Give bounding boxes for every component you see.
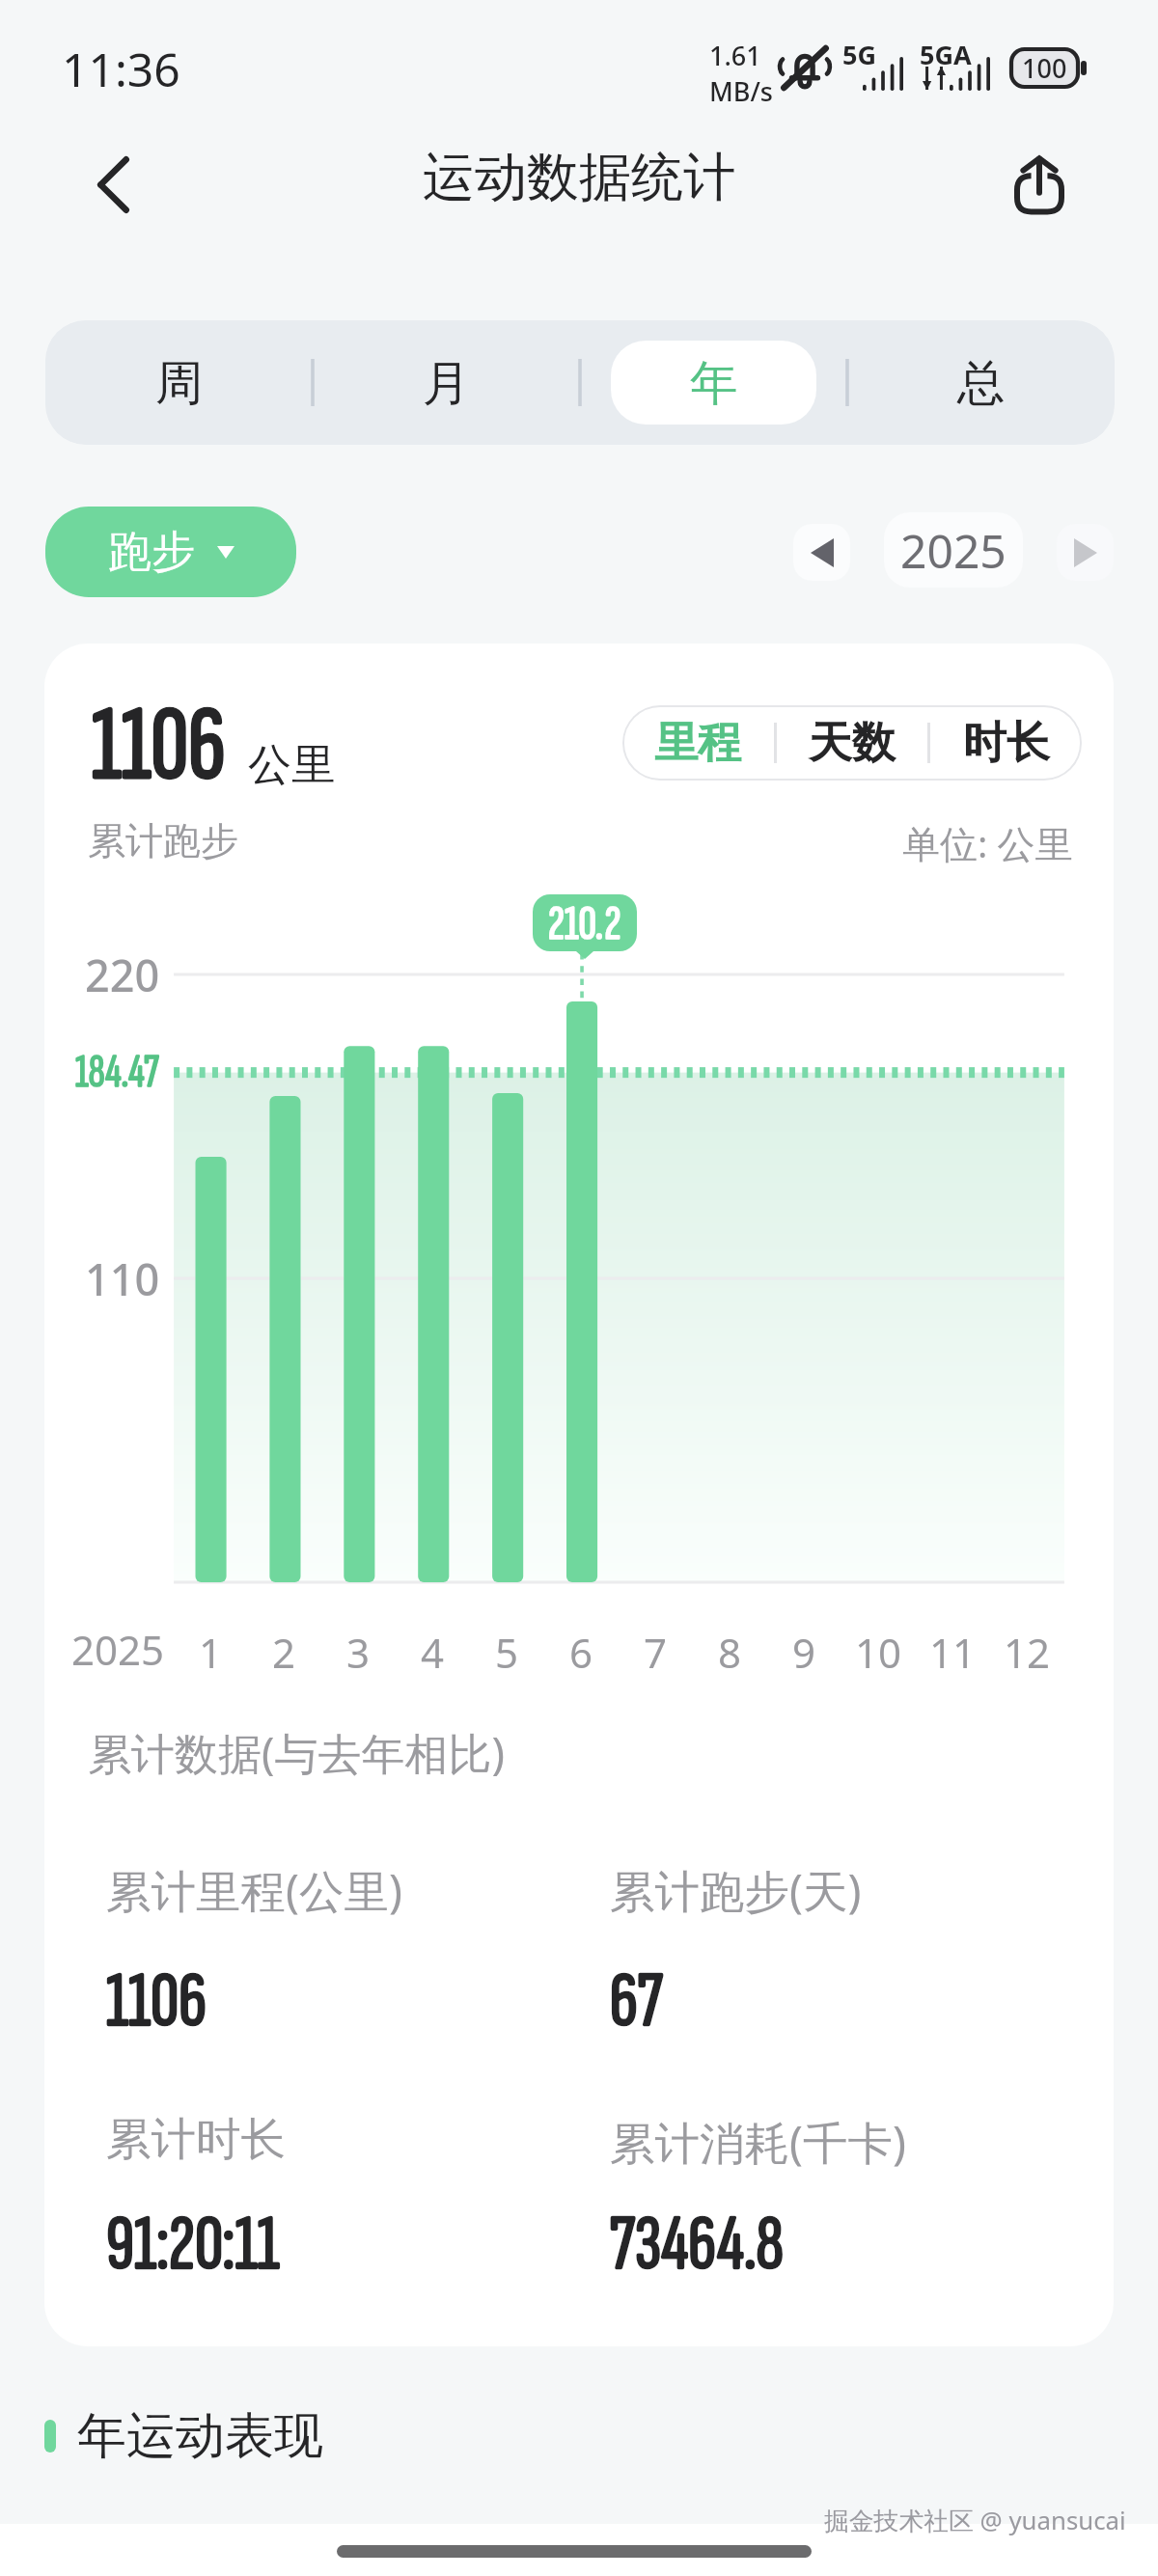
- staticText: 周: [155, 353, 204, 413]
- staticText: 1: [199, 1625, 223, 1671]
- staticText: 年: [690, 353, 738, 413]
- staticText: MB/s: [709, 73, 773, 109]
- button[interactable]: 总: [878, 341, 1084, 425]
- button[interactable]: 周: [76, 341, 282, 425]
- staticText: 11: [929, 1625, 977, 1671]
- staticText: 累计跑步(天): [610, 1859, 862, 1921]
- staticText: 累计数据(与去年相比): [88, 1723, 506, 1782]
- staticText: 1.61: [709, 38, 761, 73]
- staticText: 5G: [842, 37, 876, 72]
- staticText: 1106: [106, 1955, 207, 2048]
- button[interactable]: 天数: [809, 716, 896, 771]
- button[interactable]: 时长: [963, 716, 1050, 771]
- staticText: 2: [272, 1625, 296, 1671]
- staticText: 累计里程(公里): [106, 1859, 402, 1921]
- button[interactable]: 月: [344, 341, 549, 425]
- staticText: 210.2: [548, 894, 621, 951]
- staticText: 里程: [654, 716, 741, 771]
- button[interactable]: 跑步: [45, 507, 296, 597]
- staticText: 184.47: [75, 1045, 159, 1101]
- staticText: 单位: 公里: [902, 817, 1073, 868]
- staticText: 9: [792, 1625, 816, 1671]
- staticText: 100: [1022, 50, 1067, 86]
- staticText: 总: [957, 353, 1006, 413]
- staticText: 跑步: [108, 525, 195, 580]
- staticText: 累计消耗(千卡): [610, 2111, 906, 2173]
- staticText: 10: [855, 1625, 902, 1671]
- staticText: 时长: [963, 716, 1050, 771]
- staticText: 110: [85, 1249, 160, 1307]
- staticText: 年运动表现: [77, 2405, 323, 2467]
- staticText: 11:36: [62, 38, 180, 100]
- staticText: 运动数据统计: [423, 145, 735, 210]
- staticText: 12: [1004, 1625, 1051, 1671]
- button[interactable]: 年: [611, 341, 816, 425]
- button[interactable]: Next year: [1057, 524, 1114, 581]
- staticText: 1106: [92, 684, 226, 809]
- staticText: 月: [423, 353, 471, 413]
- staticText: 2025: [900, 519, 1006, 582]
- staticText: 5: [495, 1625, 519, 1671]
- button[interactable]: 2025: [884, 512, 1023, 588]
- staticText: 91:20:11: [106, 2198, 280, 2291]
- staticText: 天数: [809, 716, 896, 771]
- staticText: 公里: [248, 738, 335, 793]
- staticText: 掘金技术社区 @ yuansucai: [824, 2503, 1126, 2536]
- staticText: 累计跑步: [88, 817, 238, 864]
- staticText: 2025: [71, 1622, 165, 1674]
- staticText: 8: [718, 1625, 742, 1671]
- staticText: 4: [421, 1625, 445, 1671]
- button[interactable]: 里程: [654, 716, 741, 771]
- staticText: 67: [610, 1955, 663, 2048]
- staticText: 7: [644, 1625, 668, 1671]
- button[interactable]: Share: [970, 116, 1109, 255]
- staticText: 6: [569, 1625, 593, 1671]
- staticText: 累计时长: [106, 2111, 286, 2168]
- staticText: 220: [85, 945, 160, 1003]
- staticText: 73464.8: [610, 2198, 784, 2291]
- staticText: 3: [346, 1625, 371, 1671]
- button[interactable]: Previous year: [793, 524, 850, 581]
- staticText: 5GA: [920, 37, 972, 72]
- button[interactable]: Back: [52, 123, 174, 245]
